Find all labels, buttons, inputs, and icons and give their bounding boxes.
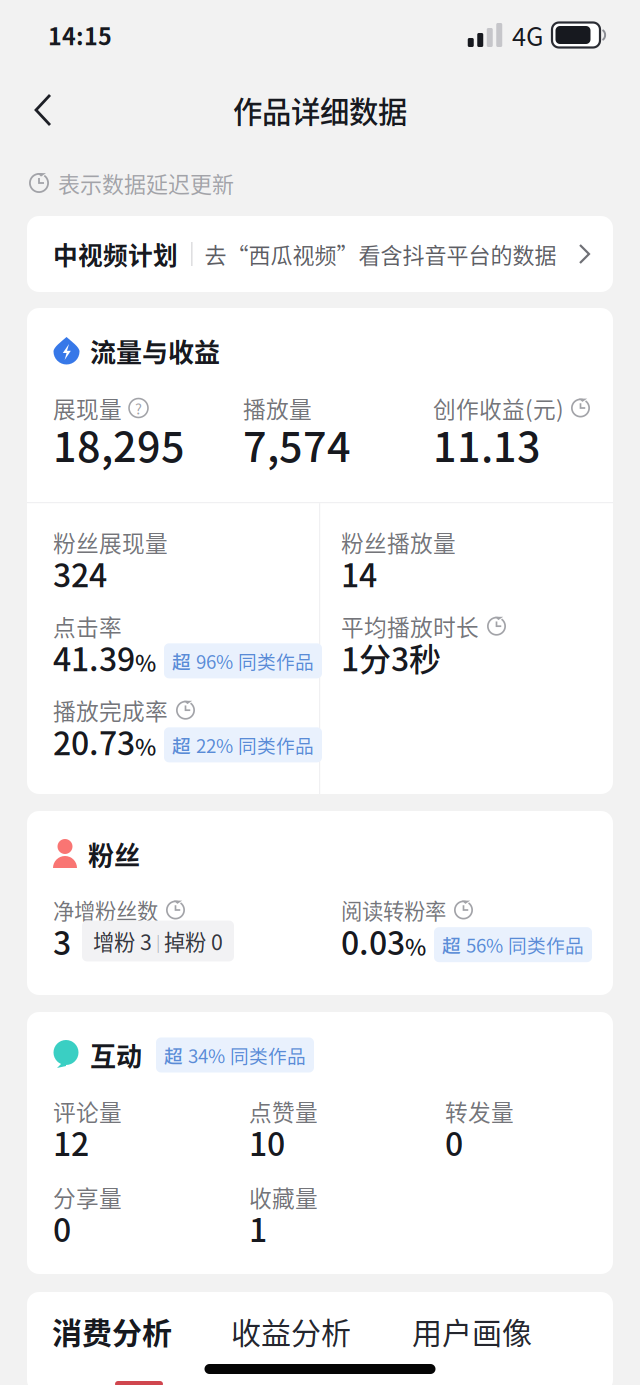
staticText: 播放量 <box>243 392 312 424</box>
staticText: 掉粉 0 <box>164 926 223 956</box>
staticText: 互动 <box>90 1036 142 1074</box>
button[interactable]: 用户画像 <box>412 1308 562 1385</box>
staticText: 流量与收益 <box>90 332 220 370</box>
staticText: 消费分析 <box>52 1309 172 1353</box>
staticText: 超 <box>164 1041 183 1068</box>
staticText: 20.73 <box>53 718 135 764</box>
button[interactable]: 消费分析 <box>52 1308 231 1385</box>
staticText: 转发量 <box>445 1095 514 1127</box>
staticText: 收益分析 <box>231 1309 351 1353</box>
button[interactable]: 返回 <box>14 79 72 141</box>
button[interactable]: 中视频计划 <box>27 216 613 292</box>
staticText: 同类作品 <box>230 1041 306 1068</box>
staticText: 12 <box>53 1119 89 1165</box>
staticText: 11.13 <box>433 414 541 474</box>
staticText: 14 <box>341 550 377 596</box>
staticText: 10 <box>249 1119 285 1165</box>
staticText: 表示数据延迟更新 <box>58 167 234 199</box>
staticText: 18,295 <box>53 414 185 474</box>
staticText: 用户画像 <box>412 1309 532 1353</box>
staticText: 点赞量 <box>249 1095 318 1127</box>
staticText: 14:15 <box>48 18 112 52</box>
staticText: ? <box>135 397 142 419</box>
staticText: 56% <box>466 931 503 958</box>
staticText: 超 <box>172 731 191 758</box>
staticText: 22% <box>196 731 233 758</box>
staticText: 粉丝展现量 <box>53 526 168 559</box>
staticText: 1 <box>249 1205 267 1251</box>
staticText: 阅读转粉率 <box>341 895 446 925</box>
staticText: 中视频计划 <box>53 236 178 272</box>
staticText: 96% <box>196 647 233 674</box>
staticText: 播放完成率 <box>53 694 168 727</box>
staticText: 0 <box>53 1205 71 1251</box>
staticText: 净增粉丝数 <box>53 895 158 925</box>
staticText: 平均播放时长 <box>341 610 479 643</box>
staticText: 0.03 <box>341 918 405 964</box>
staticText: 作品详细数据 <box>233 89 407 131</box>
staticText: | <box>152 929 164 953</box>
staticText: 评论量 <box>53 1095 122 1127</box>
staticText: 同类作品 <box>238 731 314 758</box>
staticText: 324 <box>53 550 107 596</box>
staticText: % <box>135 729 156 762</box>
staticText: 增粉 3 <box>93 926 152 956</box>
staticText: 4G <box>512 17 543 53</box>
staticText: 去“西瓜视频”看含抖音平台的数据 <box>205 238 557 270</box>
staticText: 粉丝播放量 <box>341 526 456 559</box>
staticText: % <box>405 929 426 962</box>
staticText: 3 <box>53 918 71 964</box>
staticText: 34% <box>188 1041 225 1068</box>
staticText: 收藏量 <box>249 1181 318 1213</box>
staticText: 超 <box>442 931 461 958</box>
button[interactable]: 收益分析 <box>231 1308 412 1385</box>
staticText: 0 <box>445 1119 463 1165</box>
staticText: 同类作品 <box>238 647 314 674</box>
staticText: 同类作品 <box>508 931 584 958</box>
staticText: 分享量 <box>53 1181 122 1213</box>
staticText: 展现量 <box>53 392 122 424</box>
staticText: 7,574 <box>243 414 351 474</box>
staticText: 创作收益(元) <box>433 392 564 424</box>
staticText: 1分3秒 <box>341 634 441 680</box>
staticText: 41.39 <box>53 634 135 680</box>
staticText: 超 <box>172 647 191 674</box>
staticText: 粉丝 <box>88 835 140 873</box>
staticText: % <box>135 645 156 678</box>
staticText: 点击率 <box>53 610 122 643</box>
